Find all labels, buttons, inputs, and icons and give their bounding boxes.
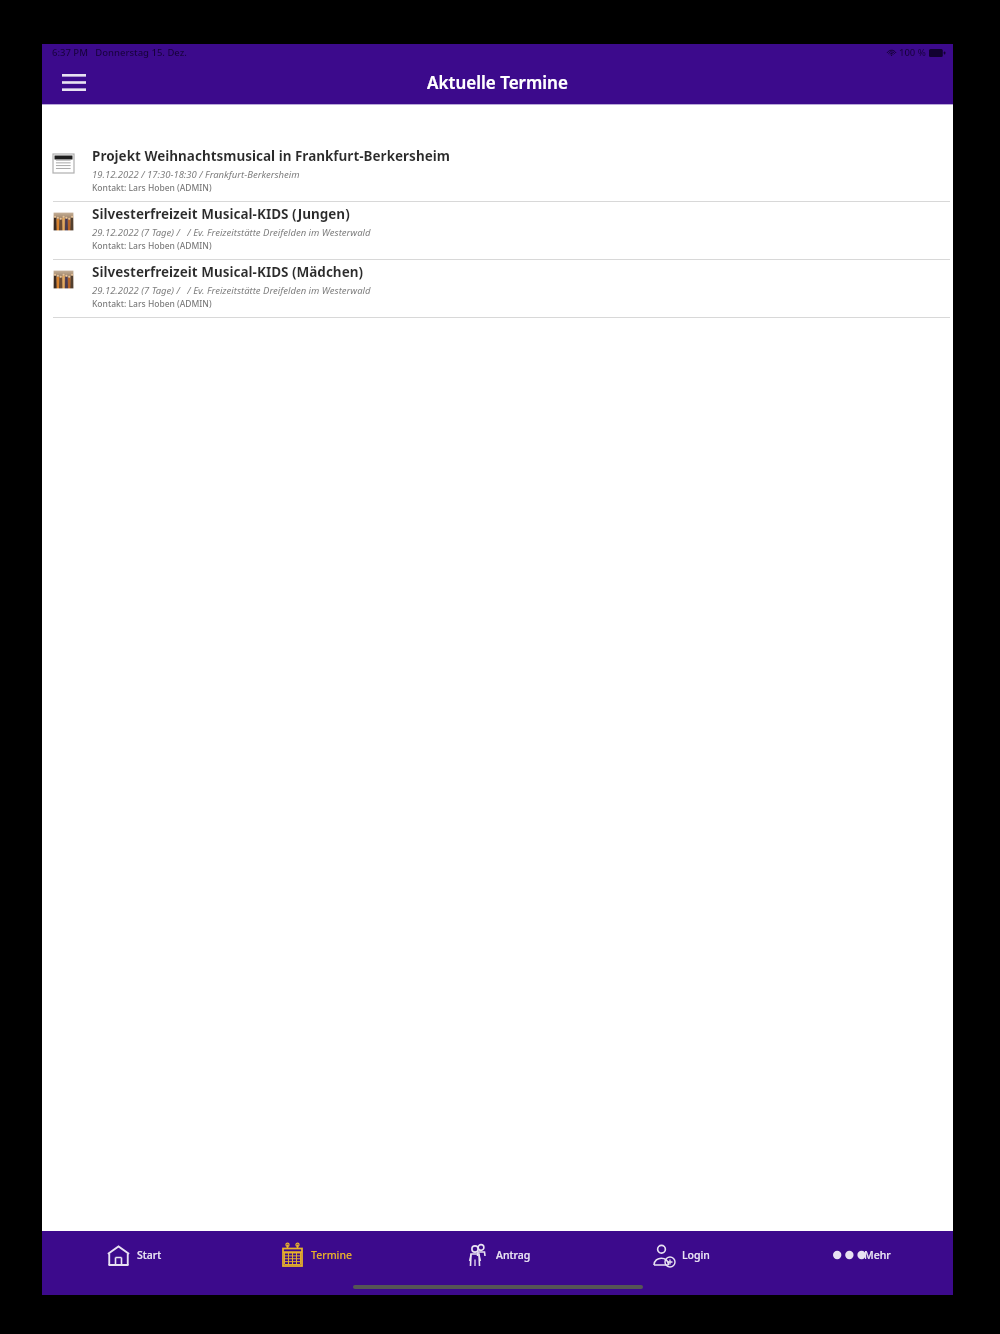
staticText: Login [682, 1248, 710, 1262]
staticText: Silvesterfreizeit Musical-KIDS (Jungen) [92, 205, 350, 223]
staticText: Mehr [864, 1248, 891, 1262]
staticText: Kontakt: Lars Hoben (ADMIN) [92, 240, 212, 252]
button[interactable]: Antrag [407, 1231, 589, 1279]
button[interactable]: Silvesterfreizeit Musical-KIDS (Mädchen) [42, 260, 953, 318]
staticText: Kontakt: Lars Hoben (ADMIN) [92, 182, 212, 194]
button[interactable]: Projekt Weihnachtsmusical in Frankfurt-B… [42, 144, 953, 202]
staticText: 29.12.2022 (7 Tage) / / Ev. Freizeitstät… [92, 226, 371, 239]
button[interactable]: Start [42, 1231, 225, 1279]
staticText: 29.12.2022 (7 Tage) / / Ev. Freizeitstät… [92, 284, 371, 297]
button[interactable]: Termine [225, 1231, 407, 1279]
button[interactable]: Silvesterfreizeit Musical-KIDS (Jungen) [42, 202, 953, 260]
staticText: Antrag [496, 1248, 531, 1262]
staticText: 6:37 PM Donnerstag 15. Dez. [52, 46, 187, 59]
button[interactable]: Mehr [771, 1231, 953, 1279]
button[interactable]: Menü [54, 62, 94, 102]
staticText: Start [137, 1248, 162, 1262]
button[interactable]: Login [589, 1231, 771, 1279]
staticText: 19.12.2022 / 17:30-18:30 / Frankfurt-Ber… [92, 168, 300, 181]
staticText: Kontakt: Lars Hoben (ADMIN) [92, 298, 212, 310]
staticText: Termine [311, 1248, 353, 1262]
staticText: Silvesterfreizeit Musical-KIDS (Mädchen) [92, 263, 364, 281]
staticText: 100 % [899, 46, 926, 59]
staticText: Projekt Weihnachtsmusical in Frankfurt-B… [92, 147, 450, 165]
staticText: Aktuelle Termine [427, 71, 568, 94]
